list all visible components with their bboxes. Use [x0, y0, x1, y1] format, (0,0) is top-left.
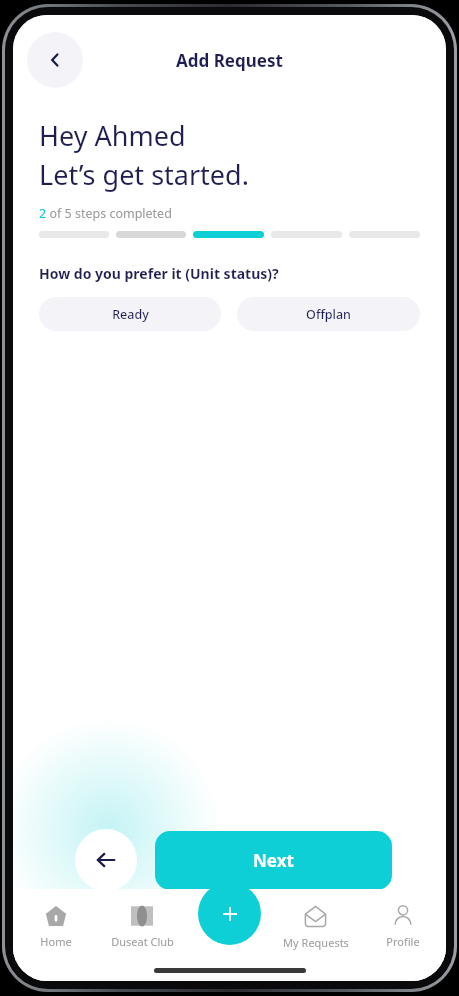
staticText: Profile [386, 934, 420, 949]
staticText: Ready [112, 306, 149, 323]
button[interactable]: Previous step [75, 829, 137, 891]
button[interactable]: Next [155, 831, 392, 890]
staticText: 2 of 5 steps completed [39, 205, 172, 222]
button[interactable]: Add [198, 882, 261, 945]
staticText: Offplan [306, 306, 351, 323]
staticText: Home [40, 934, 72, 949]
staticText: Hey Ahmed [39, 117, 186, 154]
button[interactable]: Profile [359, 889, 446, 961]
staticText: Let’s get started. [39, 156, 249, 193]
staticText: How do you prefer it (Unit status)? [39, 264, 279, 283]
button[interactable]: Duseat Club [99, 889, 185, 961]
button[interactable]: Home [13, 889, 99, 961]
staticText: Add Request [176, 49, 283, 72]
button[interactable]: Back [27, 32, 83, 88]
staticText: My Requests [283, 935, 349, 950]
staticText: Next [253, 849, 294, 872]
button[interactable]: Offplan [237, 297, 420, 331]
button[interactable]: My Requests [272, 889, 359, 961]
staticText: Duseat Club [111, 934, 174, 949]
button[interactable]: Ready [39, 297, 221, 331]
